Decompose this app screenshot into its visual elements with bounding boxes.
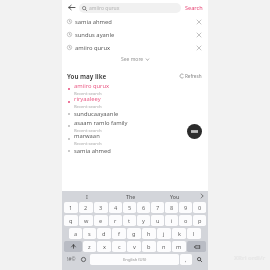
button[interactable]: 9 (179, 202, 192, 213)
staticText: You (170, 193, 180, 200)
button[interactable]: p (193, 215, 206, 226)
button[interactable]: r (109, 215, 122, 226)
button[interactable]: Remove (195, 44, 203, 52)
button[interactable]: I (64, 191, 109, 201)
button[interactable]: 5 (123, 202, 136, 213)
staticText: amiiro qurux (89, 5, 120, 12)
button[interactable]: l (187, 228, 201, 239)
button[interactable]: 8 (165, 202, 178, 213)
button[interactable]: b (142, 241, 156, 252)
button[interactable]: i (165, 215, 178, 226)
staticText: g (132, 230, 136, 238)
button[interactable]: a (69, 228, 82, 239)
button[interactable]: w (79, 215, 93, 226)
staticText: 2 (84, 204, 88, 212)
button[interactable]: asaam ramlo family (62, 119, 208, 132)
button[interactable]: 2 (79, 202, 93, 213)
staticText: y (142, 217, 145, 225)
staticText: f (118, 230, 120, 238)
button[interactable]: s (83, 228, 96, 239)
staticText: English (US) (123, 257, 147, 263)
button[interactable]: amiiro qurux (62, 41, 208, 54)
button[interactable]: k (172, 228, 186, 239)
staticText: riryaaleey (74, 95, 101, 103)
staticText: See more (121, 56, 144, 63)
button[interactable]: The (109, 191, 153, 201)
staticText: samia ahmed (75, 18, 195, 26)
button[interactable]: u (151, 215, 164, 226)
button[interactable]: 4 (109, 202, 122, 213)
button[interactable]: marwaan (62, 132, 208, 145)
staticText: sundus ayanle (75, 31, 195, 39)
button[interactable]: 3 (94, 202, 108, 213)
button[interactable]: t (123, 215, 136, 226)
button[interactable]: z (83, 241, 96, 252)
staticText: n (162, 243, 166, 251)
staticText: samia ahmed (74, 147, 111, 155)
button[interactable]: sundus ayanle (62, 28, 208, 41)
button[interactable]: sunducaayaanle (62, 108, 208, 119)
staticText: d (102, 230, 106, 238)
staticText: l (193, 230, 195, 238)
staticText: s (88, 230, 91, 238)
button[interactable]: English (US) (90, 254, 179, 265)
staticText: a (74, 230, 78, 238)
staticText: marwaan (74, 132, 100, 140)
staticText: 3 (99, 204, 103, 212)
button[interactable]: d (97, 228, 111, 239)
staticText: amiiro qurux (75, 44, 195, 52)
button[interactable]: 6 (137, 202, 150, 213)
button[interactable]: h (142, 228, 156, 239)
button[interactable]: j (157, 228, 171, 239)
button[interactable]: q (64, 215, 78, 226)
button[interactable]: samia ahmed (62, 15, 208, 28)
button[interactable]: y (137, 215, 150, 226)
button[interactable]: See more (117, 55, 153, 64)
button[interactable]: Remove (195, 18, 203, 26)
button[interactable]: c (112, 241, 126, 252)
staticText: h (147, 230, 151, 238)
button[interactable]: 1 (64, 202, 78, 213)
button[interactable]: You (153, 191, 197, 201)
staticText: 7 (156, 204, 160, 212)
button[interactable]: 0 (193, 202, 206, 213)
staticText: i (171, 217, 173, 225)
button[interactable]: amiiro qurux (79, 3, 181, 13)
staticText: v (133, 243, 136, 251)
button[interactable]: f (112, 228, 126, 239)
button[interactable]: Refresh (179, 73, 203, 79)
staticText: b (147, 243, 151, 251)
staticText: Recent search (74, 141, 102, 145)
button[interactable]: m (172, 241, 186, 252)
button[interactable]: x (97, 241, 111, 252)
staticText: m (176, 243, 182, 251)
button[interactable]: More suggestions (197, 191, 206, 201)
button[interactable]: Remove (195, 31, 203, 39)
staticText: amiiro qurux (74, 82, 110, 90)
staticText: r (114, 217, 117, 225)
button[interactable]: Symbols (64, 254, 78, 265)
button[interactable]: e (94, 215, 108, 226)
button[interactable]: o (179, 215, 192, 226)
button[interactable]: v (127, 241, 141, 252)
button[interactable]: Emoji (78, 254, 89, 265)
button[interactable]: Search (184, 4, 204, 11)
button[interactable]: Compose (187, 124, 202, 139)
staticText: z (88, 243, 91, 251)
button[interactable]: , (180, 254, 192, 265)
button[interactable]: 7 (151, 202, 164, 213)
button[interactable]: Backspace (187, 241, 206, 252)
button[interactable]: Back (66, 2, 77, 13)
staticText: 0 (198, 204, 202, 212)
staticText: XRri ordi/r (234, 254, 266, 262)
staticText: c (118, 243, 121, 251)
staticText: 1 (69, 204, 73, 212)
button[interactable]: riryaaleey (62, 95, 208, 108)
button[interactable]: amiiro qurux (62, 82, 208, 95)
button[interactable]: Search (193, 254, 206, 265)
staticText: p (198, 217, 202, 225)
button[interactable]: Shift (64, 241, 82, 252)
button[interactable]: g (127, 228, 141, 239)
button[interactable]: samia ahmed (62, 145, 208, 156)
button[interactable]: n (157, 241, 171, 252)
